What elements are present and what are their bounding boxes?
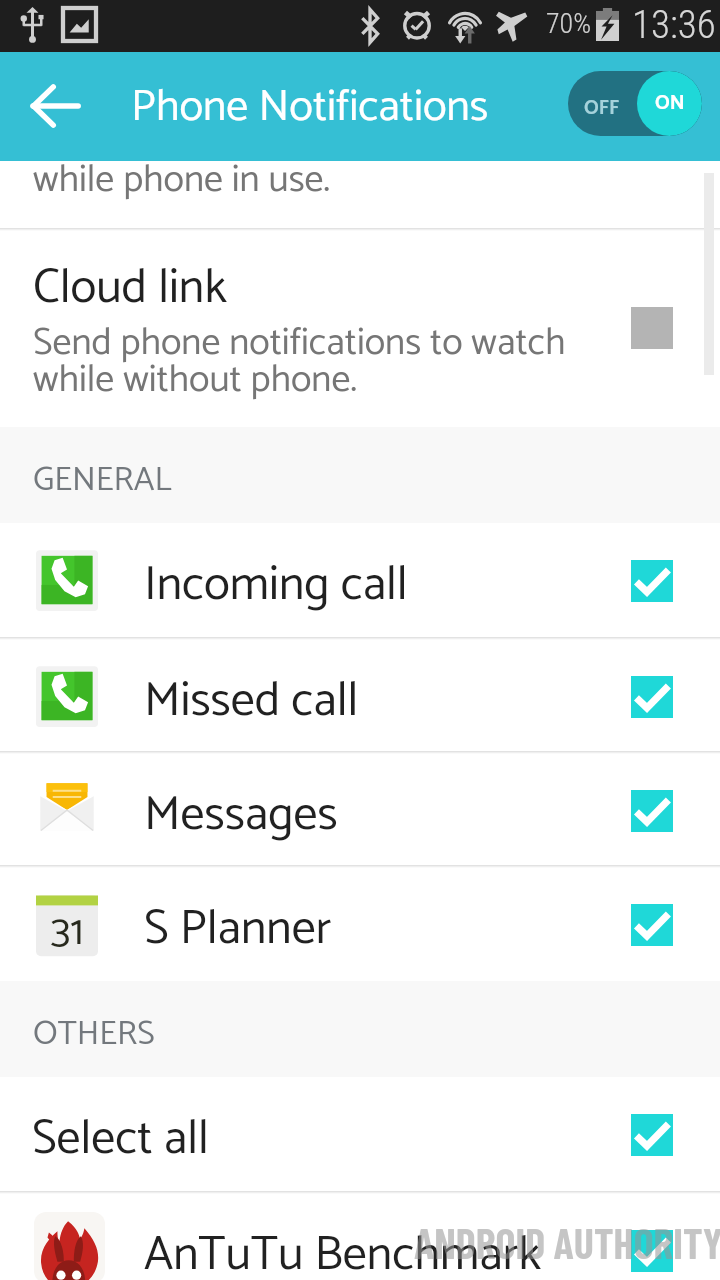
- staticText: OFF: [584, 92, 620, 125]
- staticText: 13:36: [632, 2, 716, 48]
- staticText: S Planner: [144, 890, 332, 969]
- staticText: OTHERS: [33, 1007, 155, 1063]
- button[interactable]: Missed call: [0, 639, 720, 753]
- staticText: Cloud link: [33, 249, 227, 328]
- staticText: 70%: [546, 7, 592, 40]
- button[interactable]: Messages: [0, 753, 720, 867]
- staticText: AnTuTu Benchmark: [144, 1216, 541, 1280]
- button[interactable]: 31: [0, 867, 720, 981]
- staticText: Incoming call: [144, 546, 408, 625]
- staticText: Missed call: [144, 662, 359, 741]
- button[interactable]: OFF: [568, 71, 702, 136]
- button[interactable]: AnTuTu Benchmark: [0, 1193, 720, 1280]
- staticText: while phone in use.: [33, 149, 330, 211]
- staticText: Select all: [32, 1100, 209, 1179]
- staticText: ANDROID AUTHORITY: [414, 1217, 720, 1267]
- staticText: 31: [51, 898, 84, 960]
- staticText: Phone Notifications: [131, 72, 489, 144]
- button[interactable]: Select all: [0, 1077, 720, 1191]
- button[interactable]: Back: [26, 77, 84, 135]
- staticText: ON: [655, 87, 685, 120]
- button[interactable]: Incoming call: [0, 523, 720, 637]
- button[interactable]: Cloud link: [0, 230, 720, 427]
- staticText: Send phone notifications to watch while …: [33, 312, 566, 412]
- staticText: GENERAL: [33, 453, 172, 509]
- staticText: Messages: [144, 776, 338, 855]
